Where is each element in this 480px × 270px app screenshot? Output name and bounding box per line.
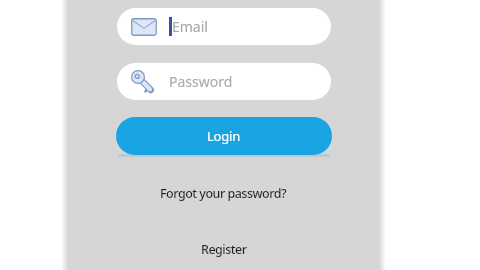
- staticText: Password: [169, 72, 233, 91]
- staticText: Login: [207, 127, 241, 145]
- button[interactable]: Forgot your password?: [160, 185, 287, 202]
- button[interactable]: Login: [116, 117, 332, 155]
- button[interactable]: Email: [117, 8, 331, 45]
- button[interactable]: Register: [201, 241, 247, 258]
- button[interactable]: Password: [117, 63, 331, 100]
- staticText: Register: [201, 241, 247, 258]
- staticText: Forgot your password?: [160, 185, 287, 202]
- staticText: Email: [172, 17, 208, 36]
